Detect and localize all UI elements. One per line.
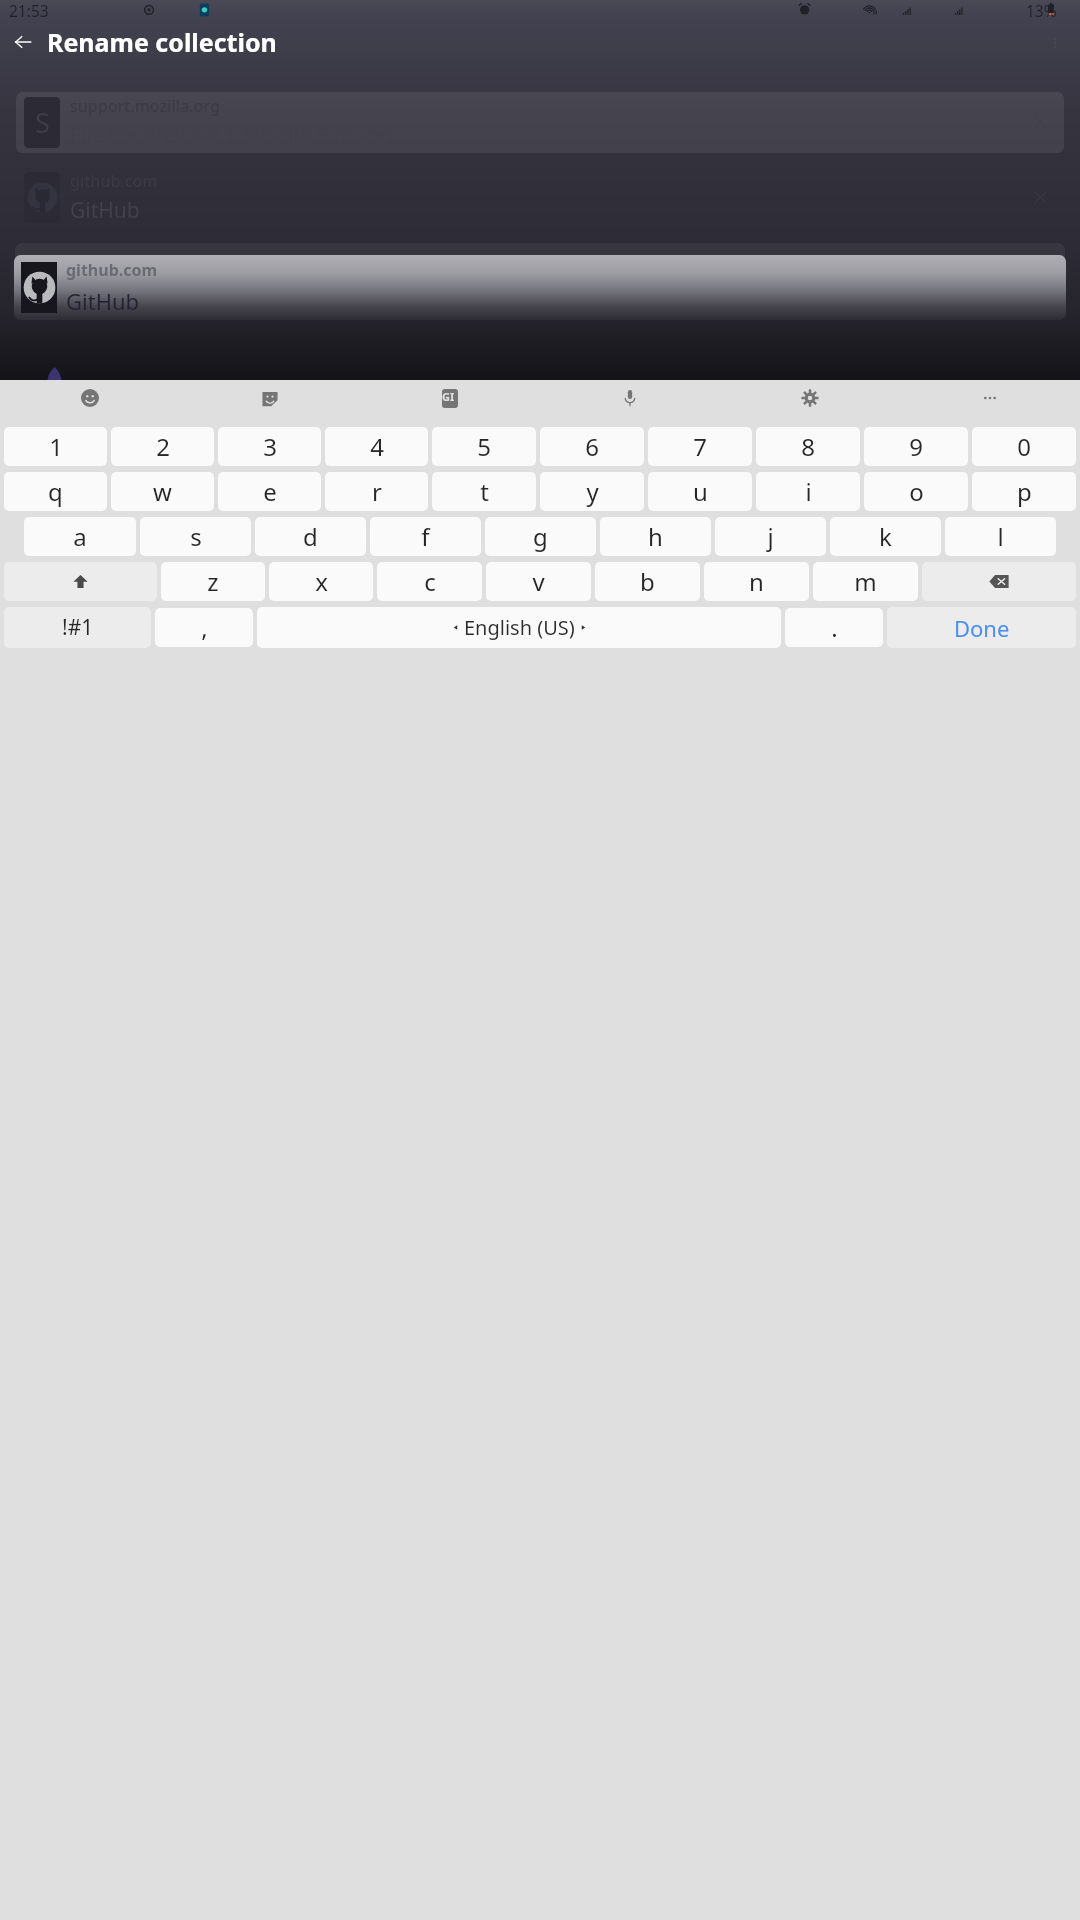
button[interactable]: Emoji: [0, 380, 180, 416]
staticText: z: [207, 565, 219, 598]
staticText: u: [693, 475, 708, 508]
button[interactable]: h: [600, 517, 711, 556]
button[interactable]: Keyboard settings: [720, 380, 900, 416]
staticText: support.mozilla.org: [70, 95, 220, 117]
staticText: g: [533, 520, 548, 553]
button[interactable]: c: [377, 562, 482, 601]
staticText: i: [805, 475, 812, 508]
staticText: 4: [370, 430, 384, 463]
button[interactable]: !#1: [4, 607, 151, 648]
button[interactable]: Done: [887, 607, 1076, 648]
button[interactable]: y: [540, 472, 644, 511]
staticText: github.com: [66, 259, 158, 281]
staticText: GitHub: [70, 196, 140, 225]
button[interactable]: Backspace: [922, 562, 1076, 601]
button[interactable]: 6: [540, 427, 644, 466]
button[interactable]: 9: [864, 427, 968, 466]
staticText: Done: [954, 613, 1010, 643]
button[interactable]: t: [432, 472, 536, 511]
button[interactable]: 4: [325, 427, 428, 466]
staticText: 0: [1017, 430, 1031, 463]
button[interactable]: GIF: [360, 380, 540, 416]
button[interactable]: English (US): [257, 607, 781, 648]
staticText: f: [421, 520, 430, 553]
button[interactable]: Stickers: [180, 380, 360, 416]
staticText: S: [35, 104, 50, 141]
staticText: x: [315, 565, 328, 598]
button[interactable]: 5: [432, 427, 536, 466]
button[interactable]: z: [161, 562, 265, 601]
button[interactable]: 2: [111, 427, 214, 466]
staticText: p: [1017, 475, 1032, 508]
staticText: 8: [801, 430, 815, 463]
button[interactable]: m: [813, 562, 918, 601]
button[interactable]: a: [24, 517, 136, 556]
button[interactable]: j: [715, 517, 826, 556]
button[interactable]: 0: [972, 427, 1076, 466]
staticText: q: [48, 475, 63, 508]
staticText: b: [640, 565, 655, 598]
button[interactable]: n: [704, 562, 809, 601]
staticText: s: [190, 520, 202, 553]
staticText: 21:53: [9, 0, 49, 21]
staticText: h: [648, 520, 663, 553]
staticText: v: [532, 565, 545, 598]
button[interactable]: v: [486, 562, 591, 601]
button[interactable]: 1: [4, 427, 107, 466]
button[interactable]: k: [830, 517, 941, 556]
button[interactable]: Back: [9, 28, 37, 56]
staticText: c: [424, 565, 436, 598]
staticText: a: [73, 520, 87, 553]
button[interactable]: q: [4, 472, 107, 511]
button[interactable]: e: [218, 472, 321, 511]
button[interactable]: x: [269, 562, 373, 601]
button[interactable]: ,: [155, 608, 253, 647]
staticText: m: [854, 565, 877, 598]
button[interactable]: w: [111, 472, 214, 511]
button[interactable]: l: [945, 517, 1056, 556]
staticText: github.com: [70, 170, 158, 192]
button[interactable]: 7: [648, 427, 752, 466]
staticText: e: [263, 475, 277, 508]
button[interactable]: Shift: [4, 562, 157, 601]
button[interactable]: o: [864, 472, 968, 511]
staticText: ,: [201, 611, 208, 644]
button[interactable]: u: [648, 472, 752, 511]
button[interactable]: g: [485, 517, 596, 556]
button[interactable]: github.com: [14, 255, 1066, 320]
staticText: 3: [263, 430, 277, 463]
staticText: 7: [693, 430, 707, 463]
staticText: !#1: [62, 613, 94, 642]
staticText: GitHub: [66, 286, 140, 316]
button[interactable]: S: [16, 92, 1064, 153]
button[interactable]: i: [756, 472, 860, 511]
staticText: 13%: [1026, 0, 1057, 21]
staticText: 1: [49, 430, 63, 463]
staticText: 2: [156, 430, 170, 463]
button[interactable]: 3: [218, 427, 321, 466]
button[interactable]: p: [972, 472, 1076, 511]
staticText: 6: [585, 430, 599, 463]
staticText: English (US): [464, 614, 575, 641]
button[interactable]: b: [595, 562, 700, 601]
staticText: y: [586, 475, 599, 508]
staticText: t: [480, 475, 489, 508]
staticText: n: [749, 565, 764, 598]
staticText: 9: [909, 430, 923, 463]
staticText: .: [831, 611, 838, 644]
button[interactable]: r: [325, 472, 428, 511]
button[interactable]: More: [900, 380, 1080, 416]
staticText: w: [153, 475, 172, 508]
button[interactable]: Voice input: [540, 380, 720, 416]
staticText: j: [767, 520, 774, 553]
button[interactable]: 8: [756, 427, 860, 466]
button[interactable]: f: [370, 517, 481, 556]
staticText: GIF: [442, 389, 458, 408]
staticText: l: [997, 520, 1004, 553]
button[interactable]: s: [140, 517, 251, 556]
button[interactable]: d: [255, 517, 366, 556]
staticText: 5: [477, 430, 491, 463]
button[interactable]: .: [785, 608, 883, 647]
